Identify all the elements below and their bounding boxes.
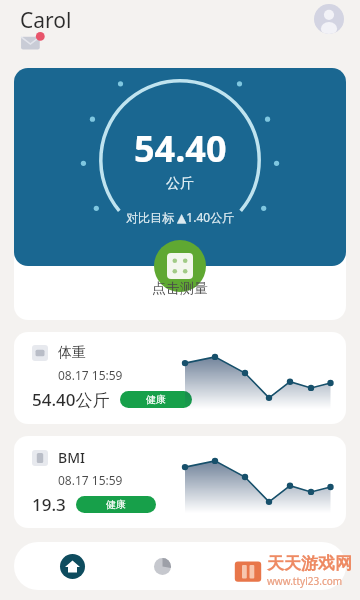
staticText: 天天游戏网 xyxy=(267,553,352,574)
staticText: 08.17 15:59 xyxy=(58,472,123,488)
staticText: BMI xyxy=(58,448,85,467)
button[interactable]: 体重 xyxy=(14,332,346,424)
button[interactable]: Measure xyxy=(154,240,206,292)
button[interactable]: Statistics xyxy=(142,546,182,586)
staticText: 点击测量 xyxy=(152,280,208,298)
staticText: Carol xyxy=(20,6,72,35)
staticText: 公斤 xyxy=(166,175,194,193)
button[interactable]: Home xyxy=(52,546,92,586)
staticText: 健康 xyxy=(106,498,126,511)
staticText: 54.40 xyxy=(134,124,227,173)
button[interactable]: Profile xyxy=(314,4,344,34)
staticText: 54.40公斤 xyxy=(32,388,110,411)
button[interactable]: BMI xyxy=(14,436,346,528)
staticText: 19.3 xyxy=(32,493,66,516)
staticText: 健康 xyxy=(146,393,166,406)
staticText: 体重 xyxy=(58,344,86,362)
staticText: 对比目标 ▲1.40公斤 xyxy=(126,209,235,225)
button[interactable]: Messages xyxy=(20,32,46,54)
staticText: 08.17 15:59 xyxy=(58,367,123,383)
staticText: www.ttyl23.com xyxy=(267,574,343,588)
